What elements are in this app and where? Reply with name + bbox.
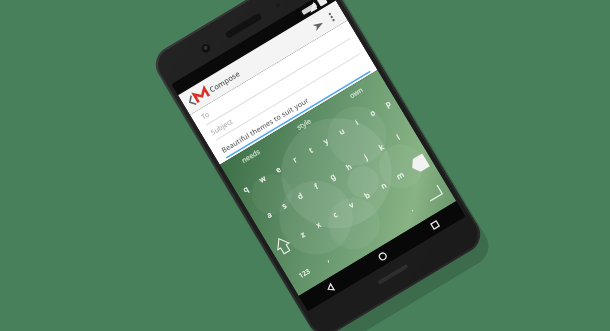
staticText: b [362,190,372,201]
staticText: c [331,209,339,220]
button[interactable]: k [364,128,398,166]
staticText: g [328,171,337,182]
staticText: a [264,209,274,220]
button[interactable]: f [299,167,333,206]
button[interactable]: t [294,131,327,169]
button[interactable]: i [340,103,373,141]
button[interactable]: g [315,157,349,196]
button[interactable]: Shift [264,225,302,267]
button[interactable]: Subject [199,36,366,146]
button[interactable]: own [325,70,386,116]
button[interactable]: style [273,101,334,147]
button[interactable]: Home [352,232,413,279]
button[interactable]: u [325,112,357,151]
staticText: o [368,107,377,118]
button[interactable]: j [348,137,382,176]
staticText: r [290,154,299,165]
button[interactable]: w [245,160,279,199]
button[interactable]: Beautiful themes to suit your [208,51,377,165]
staticText: . [407,203,415,213]
button[interactable]: l [381,118,414,157]
button[interactable]: q [229,169,262,208]
staticText: own [348,85,365,101]
button[interactable]: x [301,205,335,244]
staticText: y [321,135,330,146]
button[interactable]: To [190,20,357,130]
button[interactable]: y [309,122,342,160]
staticText: t [307,145,314,155]
button[interactable]: v [334,186,368,224]
staticText: Beautiful themes to suit your [219,94,311,155]
button[interactable]: e [261,150,295,189]
button[interactable]: r [277,140,311,179]
staticText: s [280,200,288,211]
staticText: v [347,199,355,210]
staticText: i [353,117,360,127]
staticText: q [241,183,250,194]
staticText: f [312,181,320,191]
staticText: style [295,116,314,133]
button[interactable]: d [283,176,317,215]
staticText: Subject [209,116,236,138]
button[interactable]: Backspace [399,143,439,185]
button[interactable]: s [267,186,300,225]
button[interactable]: 123 [281,250,327,296]
button[interactable]: Send [306,13,330,38]
button[interactable]: h [332,147,366,186]
button[interactable]: needs [220,133,282,179]
button[interactable]: Space [327,199,411,268]
staticText: Compose [207,68,242,94]
button[interactable]: , [309,239,345,279]
staticText: d [295,190,304,201]
staticText: k [377,141,386,153]
staticText: l [395,132,401,142]
staticText: x [313,219,323,230]
button[interactable]: Recent apps [404,201,466,248]
staticText: 123 [297,267,311,280]
staticText: needs [240,147,262,166]
staticText: e [273,164,283,175]
button[interactable]: . [393,188,429,228]
button[interactable]: More options [322,7,341,27]
staticText: , [323,254,331,264]
staticText: z [298,229,307,239]
button[interactable]: b [350,176,384,215]
button[interactable]: z [285,215,319,254]
staticText: m [394,169,406,182]
staticText: j [362,152,369,161]
button[interactable]: o [355,94,388,132]
button[interactable]: a [252,196,285,234]
staticText: n [379,180,388,191]
staticText: To [200,110,212,122]
button[interactable]: c [318,195,351,234]
staticText: h [344,161,353,172]
button[interactable]: Back [299,264,361,311]
staticText: p [383,98,392,109]
button[interactable]: n [366,166,400,205]
button[interactable]: Navigate up [183,83,213,112]
staticText: w [257,173,267,185]
button[interactable]: p [371,84,404,123]
button[interactable]: m [383,156,417,195]
staticText: u [337,126,346,137]
button[interactable]: Enter [411,172,456,218]
